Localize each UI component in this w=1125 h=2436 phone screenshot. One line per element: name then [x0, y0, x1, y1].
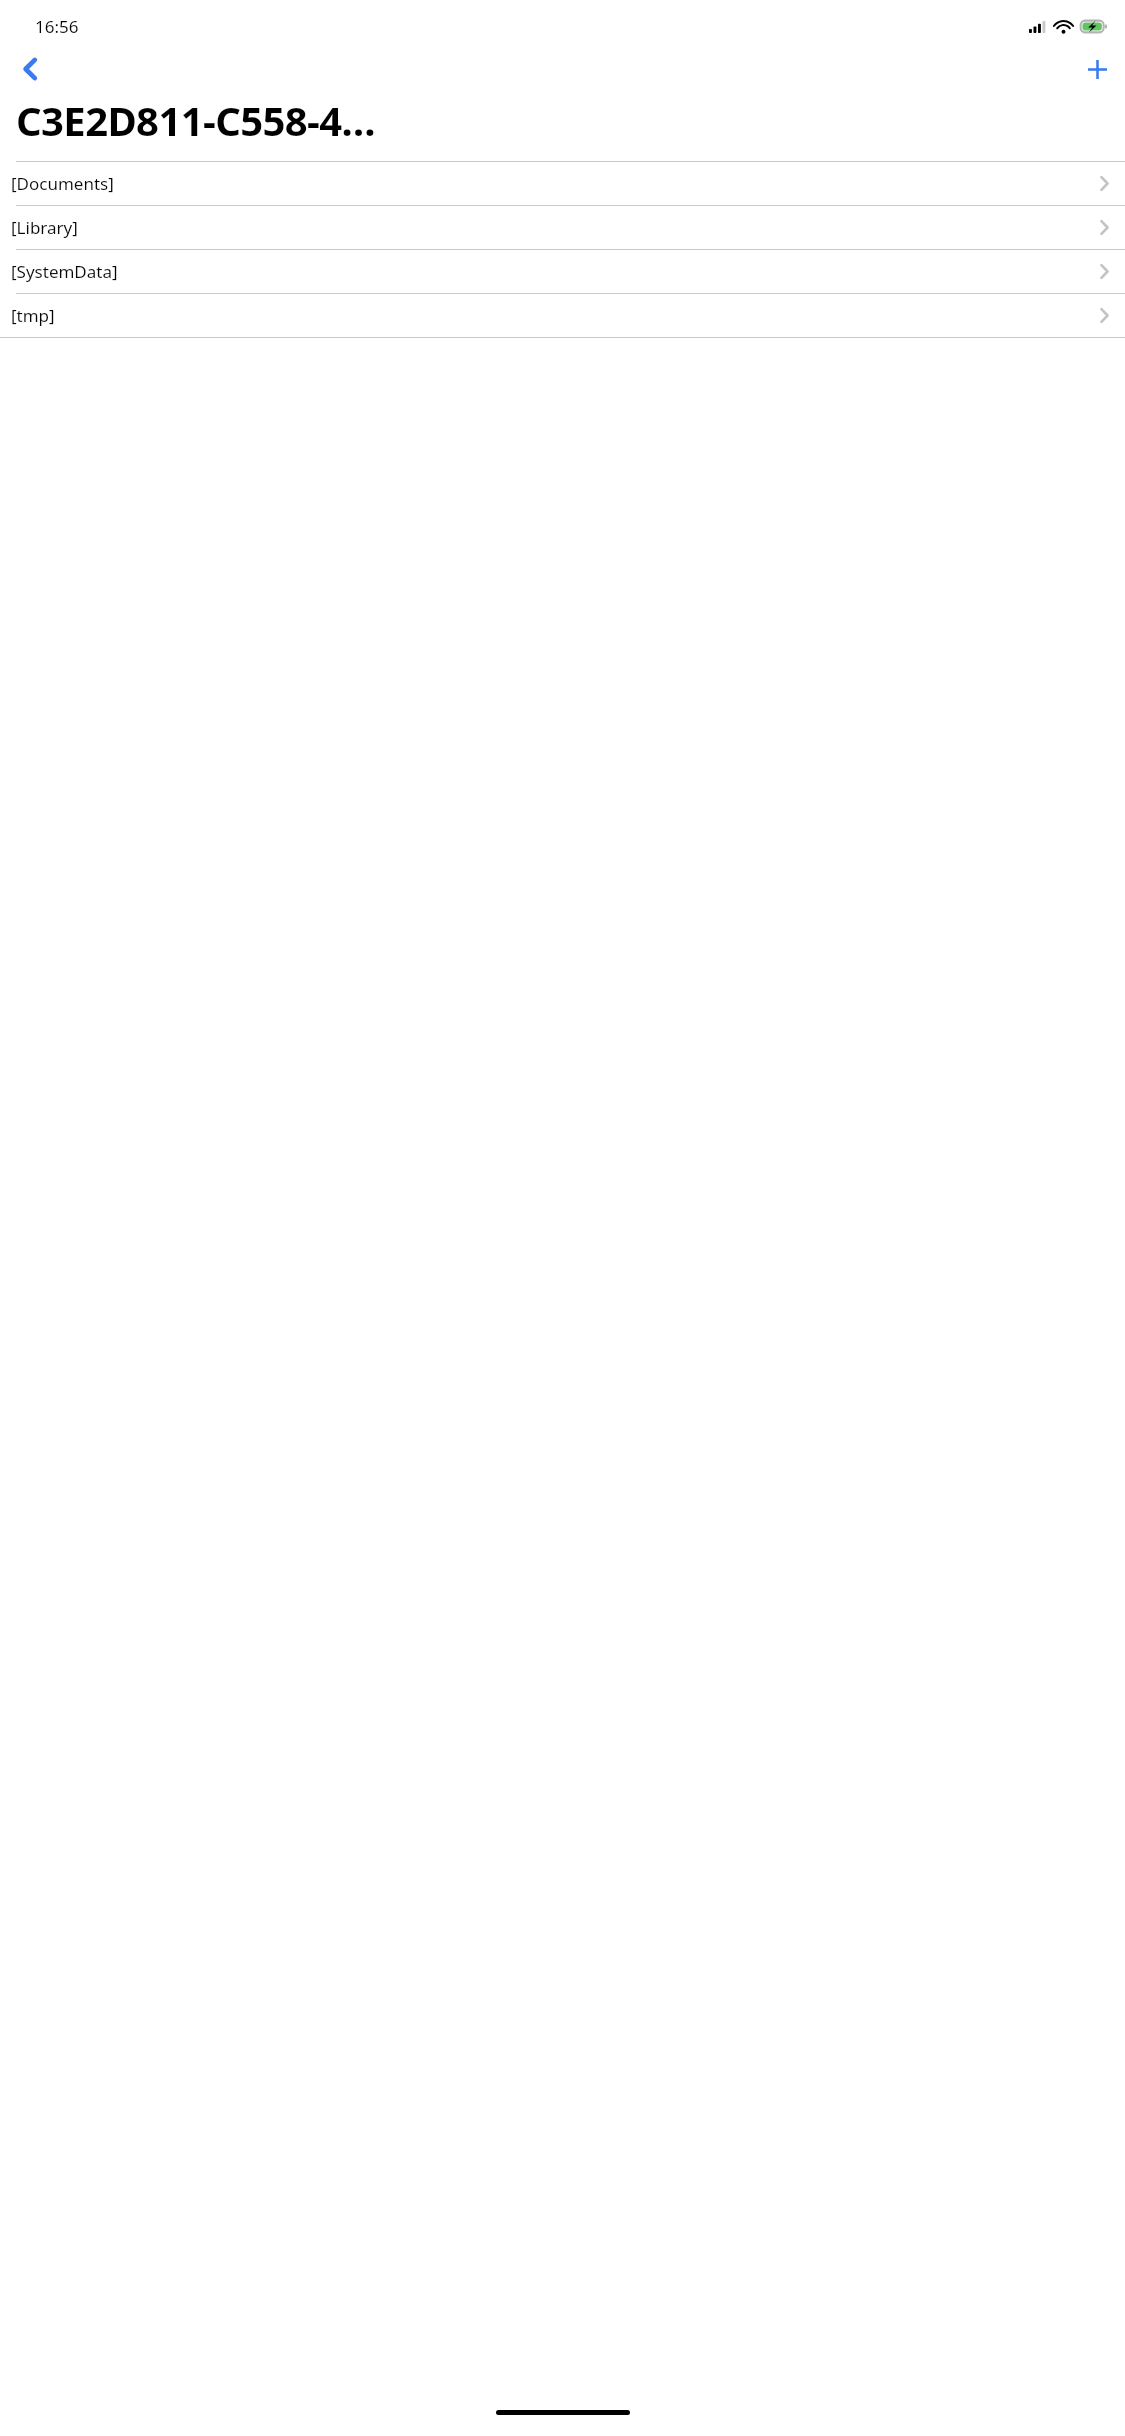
- button[interactable]: Add: [1069, 47, 1125, 91]
- button[interactable]: [tmp]: [0, 294, 1125, 337]
- staticText: [Documents]: [11, 172, 1100, 195]
- staticText: [Library]: [11, 216, 1100, 239]
- staticText: 16:56: [35, 15, 79, 38]
- button[interactable]: [Library]: [0, 206, 1125, 249]
- staticText: C3E2D811-C558-4…: [16, 93, 376, 147]
- staticText: [SystemData]: [11, 260, 1100, 283]
- button[interactable]: [Documents]: [0, 162, 1125, 205]
- staticText: [tmp]: [11, 304, 1100, 327]
- button[interactable]: [SystemData]: [0, 250, 1125, 293]
- button[interactable]: Back: [0, 47, 58, 91]
